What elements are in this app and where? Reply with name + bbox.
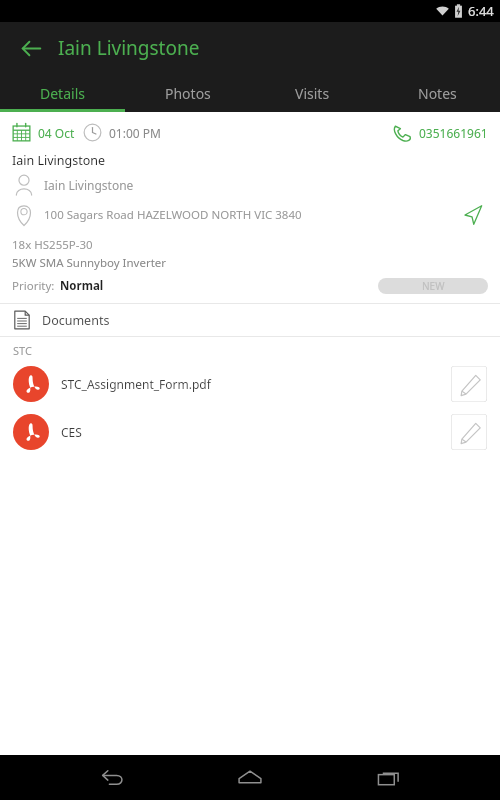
button[interactable]: NEW (378, 278, 488, 294)
button[interactable]: Recent apps (362, 755, 416, 800)
staticText: Notes (418, 84, 457, 103)
staticText: Visits (295, 84, 330, 103)
staticText: Details (40, 84, 85, 103)
button[interactable]: STC_Assignment_Form.pdf (0, 360, 500, 408)
button[interactable]: Details (0, 74, 125, 112)
button[interactable]: Navigate (456, 199, 488, 231)
staticText: Iain Livingstone (58, 35, 200, 61)
button[interactable]: CES (0, 408, 500, 456)
staticText: 100 Sagars Road HAZELWOOD NORTH VIC 3840 (44, 207, 456, 223)
button[interactable]: Edit (451, 366, 487, 402)
staticText: 04 Oct (38, 125, 75, 141)
button[interactable]: Home (223, 755, 277, 800)
button[interactable]: Edit (451, 414, 487, 450)
staticText: 18x HS255P-30 (12, 237, 93, 253)
staticText: Priority: (12, 278, 55, 294)
staticText: CES (61, 424, 451, 440)
button[interactable]: Back (85, 755, 139, 800)
staticText: Normal (60, 278, 104, 294)
staticText: 6:44 (468, 2, 494, 20)
staticText: 01:00 PM (109, 125, 161, 141)
staticText: 5KW SMA Sunnyboy Inverter (12, 255, 167, 271)
button[interactable]: Back (14, 31, 48, 65)
button[interactable]: Photos (125, 74, 250, 112)
button[interactable]: 0351661961 (392, 122, 488, 143)
button[interactable]: Notes (375, 74, 500, 112)
staticText: NEW (422, 279, 445, 293)
staticText: Photos (165, 84, 211, 103)
button[interactable]: Documents (0, 304, 500, 336)
staticText: Iain Livingstone (44, 177, 134, 193)
staticText: STC_Assignment_Form.pdf (61, 376, 451, 392)
staticText: 0351661961 (419, 125, 488, 141)
staticText: Documents (42, 312, 110, 329)
staticText: Iain Livingstone (12, 152, 106, 169)
button[interactable]: Visits (250, 74, 375, 112)
staticText: STC (13, 343, 32, 358)
